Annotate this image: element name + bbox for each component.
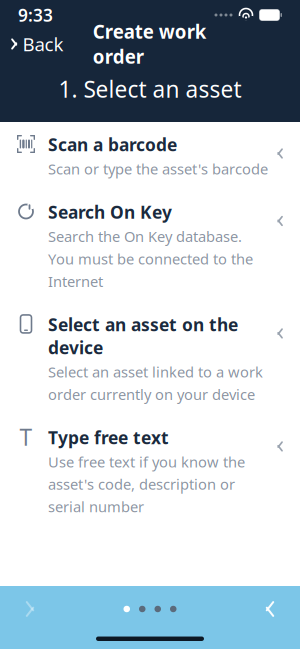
button[interactable]: Scan a barcode xyxy=(0,122,300,189)
staticText: Search On Key xyxy=(48,200,172,223)
staticText: Search the On Key database. You must be … xyxy=(48,226,253,291)
button[interactable]: T xyxy=(0,415,300,527)
staticText: Select an asset on the device xyxy=(48,313,238,359)
staticText: Scan a barcode xyxy=(48,133,177,156)
staticText: Use free text if you know the asset's co… xyxy=(48,452,245,516)
staticText: 9:33 xyxy=(18,3,53,26)
button[interactable]: Next step xyxy=(248,587,292,631)
button[interactable]: Previous step xyxy=(8,587,52,631)
button[interactable]: Select an asset on the device xyxy=(0,302,300,415)
staticText: T xyxy=(19,422,32,452)
staticText: Type free text xyxy=(48,426,169,449)
staticText: Create work order xyxy=(93,19,207,69)
button[interactable]: Back xyxy=(0,26,63,62)
staticText: Scan or type the asset's barcode xyxy=(48,159,268,178)
staticText: 1. Select an asset xyxy=(58,74,241,104)
staticText: Select an asset linked to a work order c… xyxy=(48,362,263,404)
button[interactable]: Search On Key xyxy=(0,189,300,302)
staticText: Back xyxy=(22,32,63,56)
